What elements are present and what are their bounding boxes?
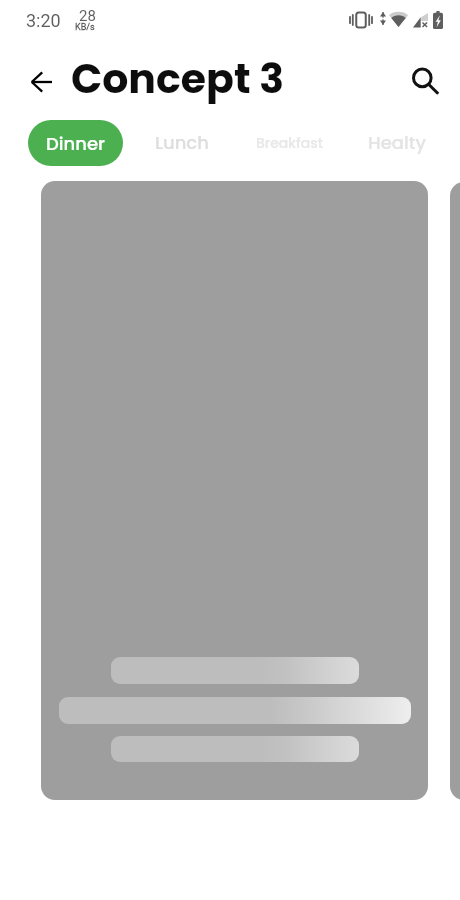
staticText: KB/s	[75, 22, 95, 33]
staticText: 28	[79, 7, 96, 25]
staticText: Healty	[368, 130, 426, 155]
button[interactable]: Search	[406, 63, 446, 103]
staticText: Concept 3	[71, 50, 285, 107]
button[interactable]: Dinner	[28, 120, 123, 166]
staticText: 3:20	[26, 10, 61, 31]
staticText: Dinner	[46, 131, 105, 156]
staticText: Breakfast	[256, 133, 323, 153]
button[interactable]: Healty	[360, 121, 434, 164]
staticText: Lunch	[155, 130, 209, 155]
button[interactable]: Back	[22, 62, 62, 102]
button[interactable]: Lunch	[147, 121, 217, 164]
button[interactable]	[41, 181, 428, 800]
button[interactable]: Breakfast	[248, 124, 331, 162]
